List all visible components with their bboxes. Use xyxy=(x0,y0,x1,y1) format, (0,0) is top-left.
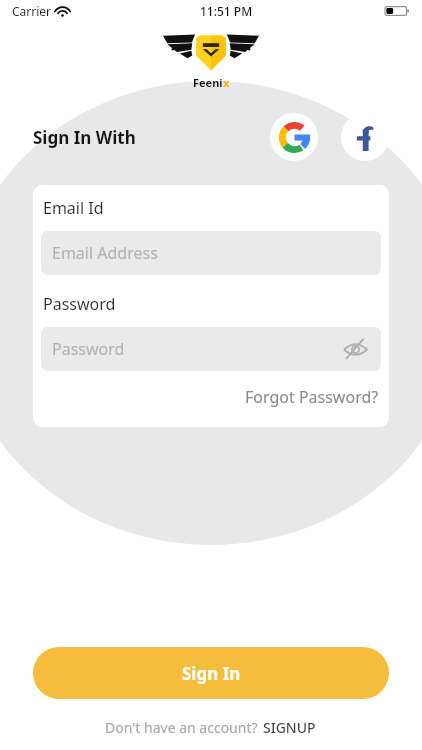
staticText: Email Id xyxy=(43,197,104,219)
staticText: Don't have an account? xyxy=(105,718,262,737)
staticText: Password xyxy=(52,338,125,360)
staticText: Password xyxy=(43,293,116,315)
staticText: 11:51 PM xyxy=(200,3,253,19)
staticText: Carrier xyxy=(12,3,52,19)
staticText: SIGNUP xyxy=(263,718,316,737)
staticText: Email Address xyxy=(52,242,158,264)
button[interactable]: Sign in with Google xyxy=(270,113,318,161)
staticText: Feeni xyxy=(193,75,223,90)
button[interactable]: SIGNUP xyxy=(262,716,317,739)
button[interactable]: Sign In xyxy=(33,647,389,699)
button[interactable]: Email Address xyxy=(41,231,381,275)
button[interactable]: Show password xyxy=(339,333,371,365)
staticText: Forgot Password? xyxy=(245,386,379,408)
button[interactable]: Password xyxy=(41,327,381,371)
staticText: Sign In xyxy=(182,662,241,685)
staticText: Sign In With xyxy=(33,126,136,149)
button[interactable]: Sign in with Facebook xyxy=(341,113,389,161)
button[interactable]: Forgot Password? xyxy=(243,383,381,411)
staticText: x xyxy=(223,75,230,90)
